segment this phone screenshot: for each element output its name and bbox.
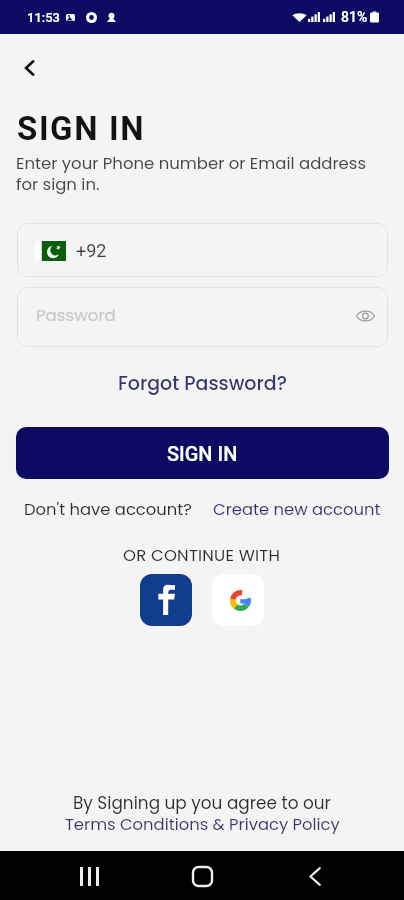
button[interactable]: Forgot Password? — [108, 366, 297, 401]
button[interactable]: Recent apps — [65, 852, 113, 900]
button[interactable]: Back — [12, 50, 47, 85]
staticText: SIGN IN — [167, 442, 238, 465]
button[interactable]: Continue with Google — [212, 574, 264, 626]
button[interactable]: Continue with Facebook — [140, 574, 192, 626]
button[interactable]: SIGN IN — [16, 427, 389, 479]
button[interactable]: Terms Conditions & Privacy Policy — [65, 813, 340, 836]
staticText: SIGN IN — [17, 109, 146, 148]
staticText: OR CONTINUE WITH — [123, 544, 281, 567]
staticText: Enter your Phone number or Email address… — [16, 152, 367, 196]
staticText: +92 — [76, 240, 107, 261]
staticText: Password — [36, 304, 116, 327]
button[interactable]: Show password — [351, 302, 379, 330]
button[interactable]: Back — [291, 852, 339, 900]
button[interactable]: +92 — [17, 223, 388, 277]
staticText: 11:53 — [27, 10, 61, 25]
button[interactable]: Password — [17, 287, 388, 347]
button[interactable]: Home — [178, 852, 226, 900]
button[interactable]: Create new account — [213, 498, 381, 521]
staticText: Don't have account? — [24, 498, 192, 521]
staticText: By Signing up you agree to our — [73, 791, 331, 815]
staticText: 81% — [341, 9, 368, 25]
